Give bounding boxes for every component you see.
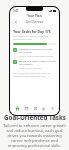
staticText: Plan tomorrow's deep-work block to sharp…: [13, 72, 56, 78]
button[interactable]: Plan tomorrow's deep-work block to sharp…: [13, 72, 56, 78]
button[interactable]: Back: [13, 19, 18, 24]
staticText: Complete a strategy session with your me…: [19, 48, 56, 54]
staticText: Complete these tasks to keep your moment…: [13, 35, 56, 41]
staticText: Your Plan: [13, 14, 56, 18]
staticText: Review your weekly reflection notes and …: [19, 60, 56, 66]
staticText: Track burnout indicators: [19, 67, 42, 70]
button[interactable]: Complete a strategy session with your me…: [13, 48, 56, 58]
staticText: Goal Overview: [18, 20, 51, 24]
staticText: Goal-Oriented Tasks: [4, 113, 66, 121]
button[interactable]: Tasks: [31, 104, 39, 112]
button[interactable]: Profile: [48, 104, 56, 112]
staticText: Focus on career independence goals: [19, 55, 54, 58]
staticText: 9:41: [13, 9, 19, 13]
button[interactable]: Plan: [22, 104, 30, 112]
button[interactable]: Insights: [39, 104, 47, 112]
button[interactable]: Review your weekly reflection notes and …: [13, 60, 56, 70]
staticText: Tailored to enhance career growth and re…: [3, 123, 66, 148]
staticText: Your Tasks for Day 175: [13, 29, 51, 34]
button[interactable]: Home: [13, 104, 21, 112]
